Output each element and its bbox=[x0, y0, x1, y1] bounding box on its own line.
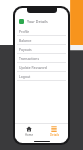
button[interactable]: Logout bbox=[15, 72, 68, 81]
button[interactable]: Details bbox=[43, 125, 65, 138]
staticText: Home bbox=[25, 133, 33, 137]
other: App logo bbox=[19, 19, 24, 24]
staticText: Transactions bbox=[19, 56, 40, 61]
button[interactable]: Transactions bbox=[15, 54, 68, 63]
button[interactable]: Profile bbox=[15, 27, 68, 36]
button[interactable]: Payouts bbox=[15, 45, 68, 54]
staticText: Profile bbox=[19, 29, 30, 34]
staticText: Details bbox=[50, 133, 59, 137]
button[interactable]: Update Password bbox=[15, 63, 68, 72]
staticText: Your Details bbox=[27, 19, 48, 24]
staticText: Logout bbox=[19, 74, 31, 79]
staticText: Update Password bbox=[19, 65, 47, 70]
button[interactable]: App logo bbox=[15, 15, 68, 27]
staticText: Payouts bbox=[19, 47, 32, 52]
staticText: Balance bbox=[19, 38, 32, 43]
button[interactable]: Balance bbox=[15, 36, 68, 45]
button[interactable]: Home bbox=[18, 125, 40, 138]
